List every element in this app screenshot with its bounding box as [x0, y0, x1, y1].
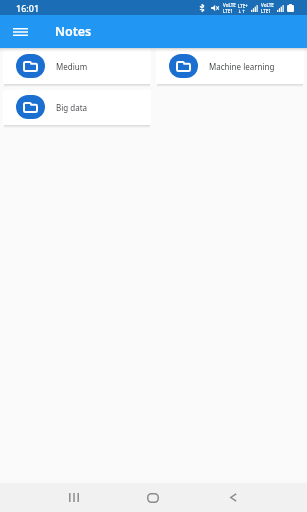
button[interactable]: Machine learning [156, 49, 304, 84]
button[interactable]: Menu [0, 15, 41, 48]
staticText: VoLTE [223, 2, 236, 8]
button[interactable]: Home [113, 483, 193, 512]
button[interactable]: Back [193, 483, 273, 512]
staticText: Medium [56, 61, 88, 72]
staticText: 16:01 [16, 2, 40, 14]
staticText: VoLTE [261, 2, 274, 8]
staticText: Big data [56, 102, 88, 113]
staticText: Machine learning [209, 61, 275, 72]
staticText: ↓↑ [238, 9, 246, 14]
staticText: Notes [55, 23, 92, 40]
staticText: LTE1 [261, 8, 271, 14]
staticText: LTE1 [223, 8, 233, 14]
button[interactable]: Medium [3, 49, 151, 84]
staticText: LTE+ [238, 3, 248, 9]
button[interactable]: Recent apps [34, 483, 113, 512]
button[interactable]: Big data [3, 90, 151, 125]
